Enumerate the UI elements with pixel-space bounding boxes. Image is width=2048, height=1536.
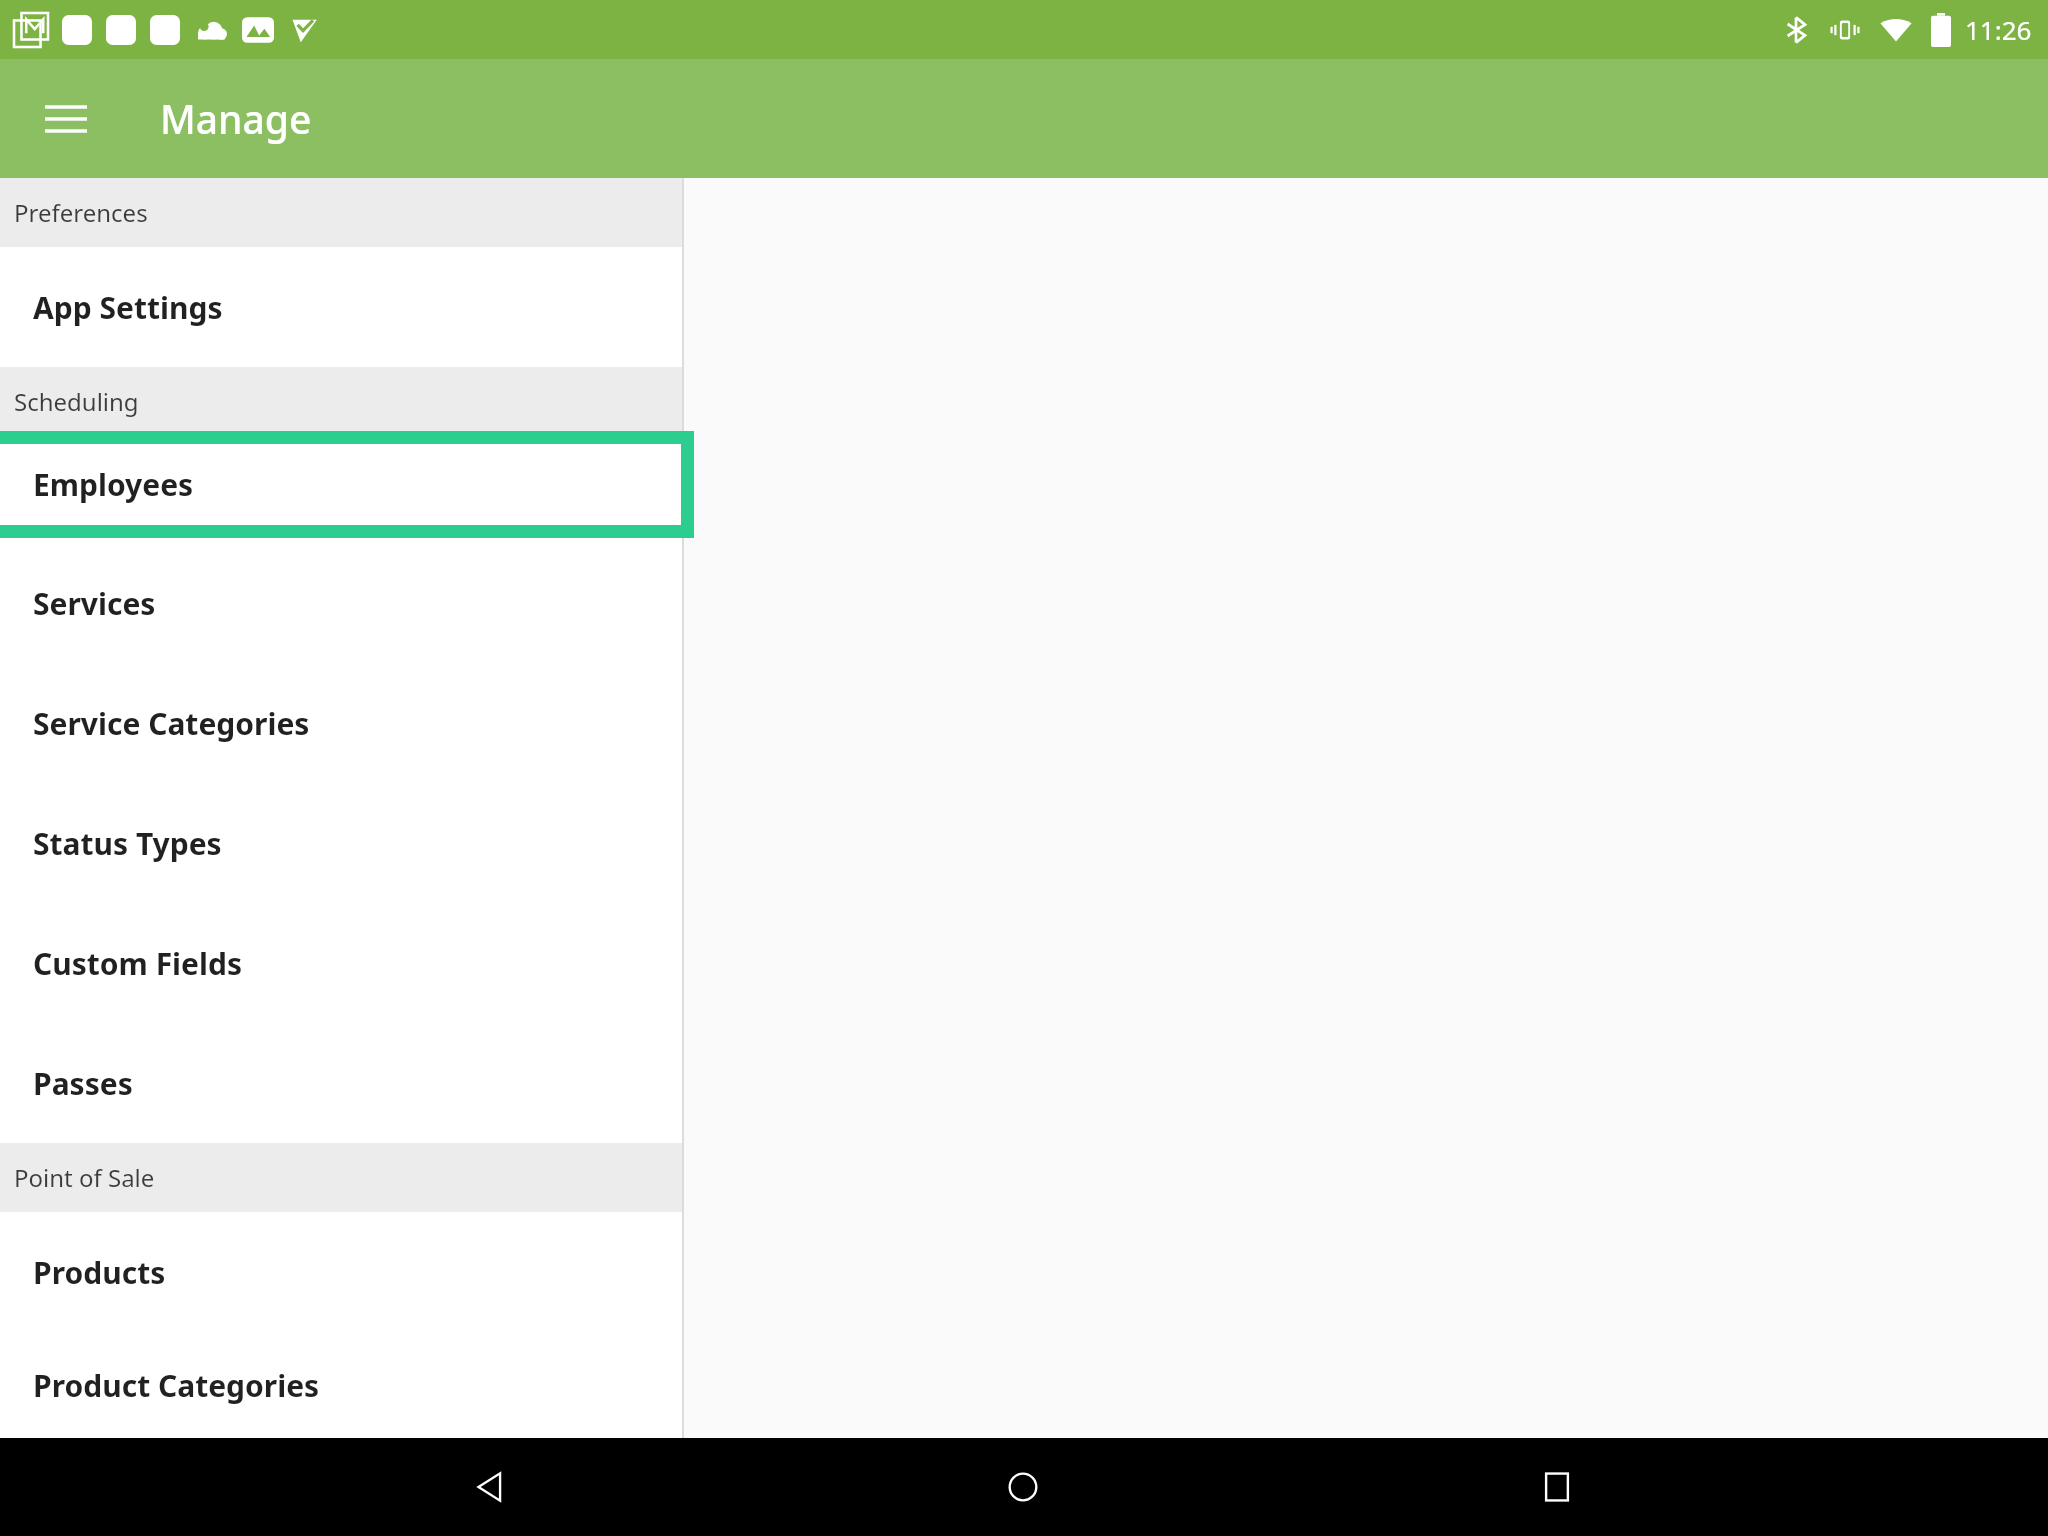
staticText: App Settings: [33, 287, 223, 328]
button[interactable]: Products: [0, 1212, 682, 1332]
staticText: Status Types: [33, 823, 222, 864]
staticText: Passes: [33, 1063, 133, 1104]
staticText: Products: [33, 1252, 166, 1293]
staticText: Services: [33, 583, 156, 624]
button[interactable]: Open navigation drawer: [28, 81, 104, 157]
staticText: Product Categories: [33, 1365, 320, 1406]
button[interactable]: Employees: [0, 431, 694, 538]
staticText: Manage: [160, 92, 312, 145]
button[interactable]: Passes: [0, 1023, 682, 1143]
button[interactable]: Status Types: [0, 783, 682, 903]
button[interactable]: App Settings: [0, 247, 682, 367]
button[interactable]: Product Categories: [0, 1332, 682, 1438]
staticText: Service Categories: [33, 703, 310, 744]
button[interactable]: Back: [447, 1444, 533, 1530]
staticText: Custom Fields: [33, 943, 242, 984]
button[interactable]: Custom Fields: [0, 903, 682, 1023]
button[interactable]: Services: [0, 543, 682, 663]
staticText: 11:26: [1965, 12, 2032, 47]
staticText: Scheduling: [14, 385, 139, 418]
staticText: Point of Sale: [14, 1161, 155, 1194]
button[interactable]: Service Categories: [0, 663, 682, 783]
button[interactable]: Recent apps: [1514, 1444, 1600, 1530]
staticText: Employees: [33, 464, 194, 505]
button[interactable]: Home: [980, 1444, 1066, 1530]
staticText: Preferences: [14, 196, 148, 229]
